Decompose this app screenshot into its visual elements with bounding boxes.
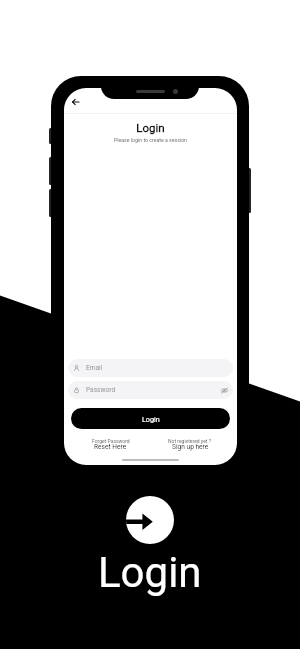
button[interactable]: Login	[71, 408, 230, 429]
staticText: Forget Password	[92, 438, 130, 444]
button[interactable]: Not registered yet ?	[150, 436, 230, 451]
staticText: Login	[142, 415, 160, 423]
button[interactable]: Forget Password	[71, 436, 150, 451]
staticText: Not registered yet ?	[168, 438, 212, 444]
staticText: Login	[98, 548, 202, 597]
button[interactable]: Login	[126, 496, 174, 544]
button[interactable]: Back	[67, 94, 83, 110]
button[interactable]: Email	[68, 359, 233, 377]
staticText: Login	[64, 121, 237, 134]
staticText: Please login to create a session	[64, 137, 237, 143]
staticText: Email	[86, 364, 103, 372]
button[interactable]: Password	[68, 381, 233, 399]
staticText: Sign up here	[172, 443, 209, 451]
staticText: Reset Here	[94, 443, 127, 451]
staticText: Password	[86, 386, 116, 394]
